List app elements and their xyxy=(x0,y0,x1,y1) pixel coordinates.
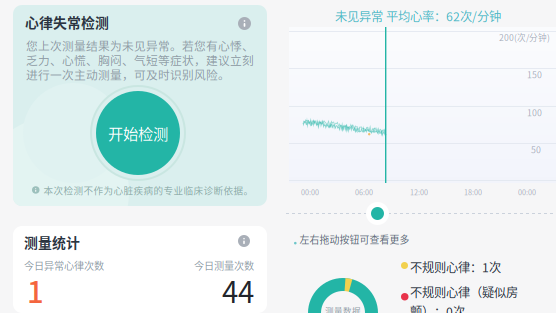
staticText: 100 xyxy=(527,106,542,119)
staticText: 150 xyxy=(527,68,542,81)
staticText: 00:00 xyxy=(301,187,319,197)
staticText: 左右拖动按钮可查看更多 xyxy=(300,232,410,246)
staticText: 12:00 xyxy=(410,187,428,197)
staticText: 颤）：0次 xyxy=(410,302,465,313)
staticText: 开始检测 xyxy=(108,122,168,144)
staticText: 乏力、心慌、胸闷、气短等症状，建议立刻 xyxy=(26,51,254,68)
staticText: 测量数据 xyxy=(325,305,361,313)
staticText: 您上次测量结果为未见异常。若您有心悸、 xyxy=(26,37,254,54)
button[interactable]: 说明 xyxy=(238,17,251,30)
staticText: 44 xyxy=(222,269,254,311)
staticText: 不规则心律（疑似房 xyxy=(410,283,518,301)
staticText: 今日异常心律次数 xyxy=(24,258,104,273)
staticText: 本次检测不作为心脏疾病的专业临床诊断依据。 xyxy=(43,183,253,197)
staticText: 心律失常检测 xyxy=(25,12,109,32)
staticText: 18:00 xyxy=(464,187,482,197)
button[interactable]: 说明 xyxy=(238,235,250,247)
staticText: 00:00 xyxy=(518,187,536,197)
staticText: 1 xyxy=(27,269,44,311)
button[interactable]: 开始检测 xyxy=(90,85,186,181)
staticText: 不规则心律：1次 xyxy=(410,258,501,276)
staticText: 测量统计 xyxy=(24,232,80,252)
staticText: 50 xyxy=(531,143,541,156)
staticText: 200(次/分钟) xyxy=(499,31,550,43)
staticText: 今日测量次数 xyxy=(194,258,254,273)
staticText: 进行一次主动测量，可及时识别风险。 xyxy=(26,66,230,83)
button[interactable]: 时间滑块 xyxy=(366,202,389,225)
staticText: 06:00 xyxy=(355,187,373,197)
staticText: 未见异常 平均心率：62次/分钟 xyxy=(335,7,501,25)
